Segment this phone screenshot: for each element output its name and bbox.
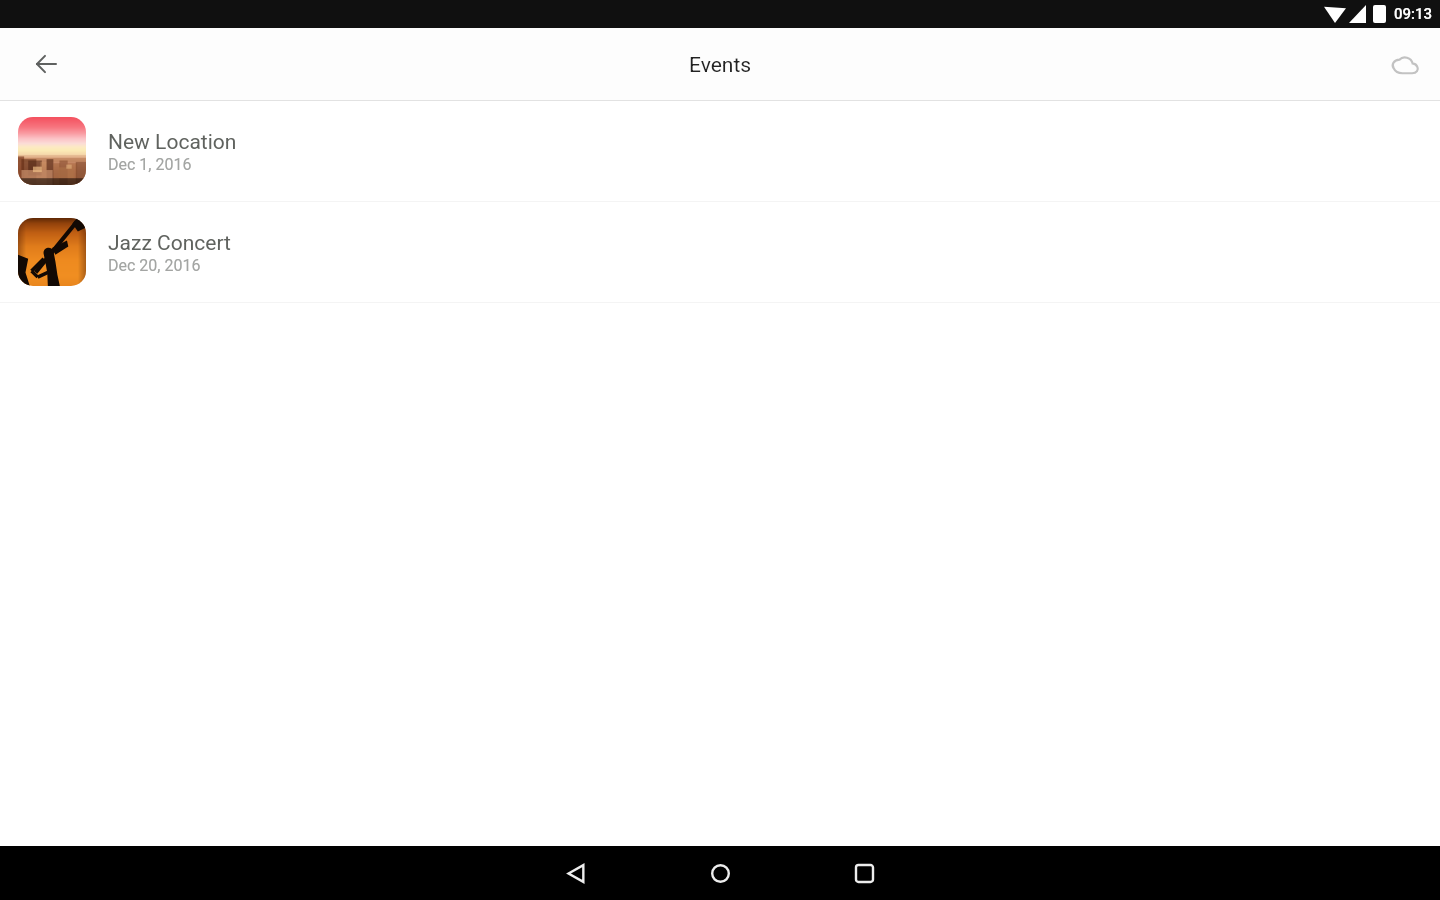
staticText: Events <box>689 53 752 78</box>
button[interactable]: Recent apps <box>834 846 894 900</box>
button[interactable]: Cloud sync <box>1381 41 1427 87</box>
button[interactable]: Home <box>690 846 750 900</box>
staticText: Jazz Concert <box>108 231 231 256</box>
button[interactable]: Jazz Concert <box>0 202 1440 302</box>
button[interactable]: Back <box>23 41 69 87</box>
staticText: New Location <box>108 130 237 155</box>
staticText: Dec 1, 2016 <box>108 155 192 174</box>
button[interactable]: New Location <box>0 101 1440 201</box>
staticText: 09:13 <box>1394 5 1433 23</box>
button[interactable]: Back <box>546 846 606 900</box>
staticText: Dec 20, 2016 <box>108 256 201 275</box>
